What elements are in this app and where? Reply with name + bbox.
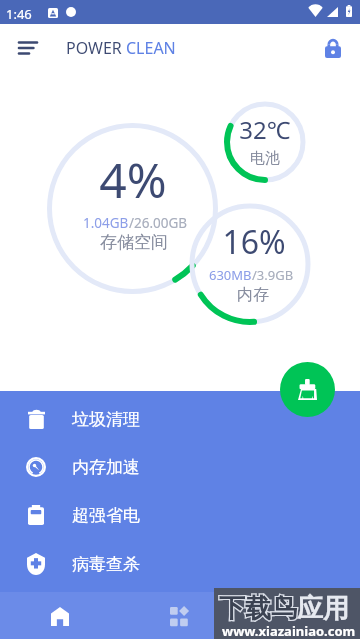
staticText: 垃圾清理: [72, 409, 140, 430]
staticText: /3.9GB: [252, 266, 294, 284]
staticText: 电池: [145, 149, 360, 168]
button[interactable]: Lock: [314, 29, 352, 67]
staticText: 内存加速: [72, 457, 140, 478]
button[interactable]: Apps: [155, 592, 203, 639]
staticText: 内存: [133, 285, 360, 305]
staticText: www.xiazainiao.com: [222, 622, 356, 639]
button[interactable]: 垃圾清理: [0, 395, 360, 443]
staticText: 16%: [134, 220, 360, 264]
staticText: 下载鸟: [219, 592, 297, 625]
button[interactable]: Home: [36, 592, 84, 639]
staticText: 下载鸟: [219, 592, 297, 625]
staticText: 1.04GB: [83, 214, 129, 232]
staticText: 应用: [297, 592, 349, 625]
button[interactable]: Clean: [280, 362, 335, 417]
staticText: 病毒查杀: [72, 554, 140, 575]
button[interactable]: Menu: [12, 32, 44, 64]
staticText: 存储空间: [14, 232, 254, 253]
staticText: 4%: [13, 147, 253, 212]
button[interactable]: 超强省电: [0, 491, 360, 539]
staticText: 超强省电: [72, 505, 140, 526]
staticText: CLEAN: [126, 37, 176, 59]
button[interactable]: 病毒查杀: [0, 540, 360, 588]
staticText: 630MB: [209, 266, 252, 284]
button[interactable]: 内存加速: [0, 443, 360, 491]
staticText: /26.00GB: [129, 214, 188, 232]
staticText: 32℃: [145, 113, 360, 146]
staticText: POWER: [66, 37, 126, 59]
staticText: 1:46: [6, 5, 32, 23]
